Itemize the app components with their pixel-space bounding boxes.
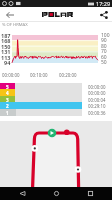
staticText: 00:00:04 bbox=[88, 97, 106, 103]
staticText: 80 bbox=[101, 43, 107, 49]
staticText: 00:00:00 bbox=[88, 84, 106, 90]
button[interactable]: Recents bbox=[78, 187, 102, 200]
staticText: 60 bbox=[101, 54, 107, 60]
staticText: 00:00:36 bbox=[88, 110, 106, 116]
button[interactable]: Share bbox=[96, 7, 112, 22]
staticText: 168 bbox=[1, 37, 11, 43]
staticText: 187 bbox=[1, 32, 11, 38]
staticText: 5 bbox=[6, 84, 9, 90]
button[interactable]: Back bbox=[10, 187, 34, 200]
staticText: 3 bbox=[6, 97, 9, 103]
staticText: % OF HRMAX bbox=[2, 22, 28, 28]
staticText: 00:20:00 bbox=[59, 72, 77, 78]
staticText: 2 bbox=[6, 103, 9, 109]
staticText: 70 bbox=[101, 48, 107, 54]
staticText: 17:29 bbox=[96, 0, 111, 7]
staticText: 94 bbox=[4, 59, 11, 65]
button[interactable]: Route map bbox=[0, 121, 112, 187]
button[interactable]: Home bbox=[44, 187, 68, 200]
staticText: 100 bbox=[101, 32, 110, 38]
staticText: 113 bbox=[1, 54, 11, 60]
staticText: 00:10:00 bbox=[30, 72, 48, 78]
staticText: 131 bbox=[1, 48, 11, 54]
button[interactable]: Back bbox=[0, 7, 20, 22]
staticText: 4 bbox=[6, 90, 9, 96]
staticText: 90 bbox=[101, 37, 107, 43]
staticText: 50 bbox=[101, 59, 107, 65]
staticText: 1 bbox=[6, 110, 9, 116]
staticText: 00:00:00 bbox=[2, 72, 20, 78]
staticText: 150 bbox=[1, 43, 11, 49]
staticText: 00:29:10 bbox=[88, 103, 106, 109]
staticText: 00:00:00 bbox=[88, 90, 106, 96]
